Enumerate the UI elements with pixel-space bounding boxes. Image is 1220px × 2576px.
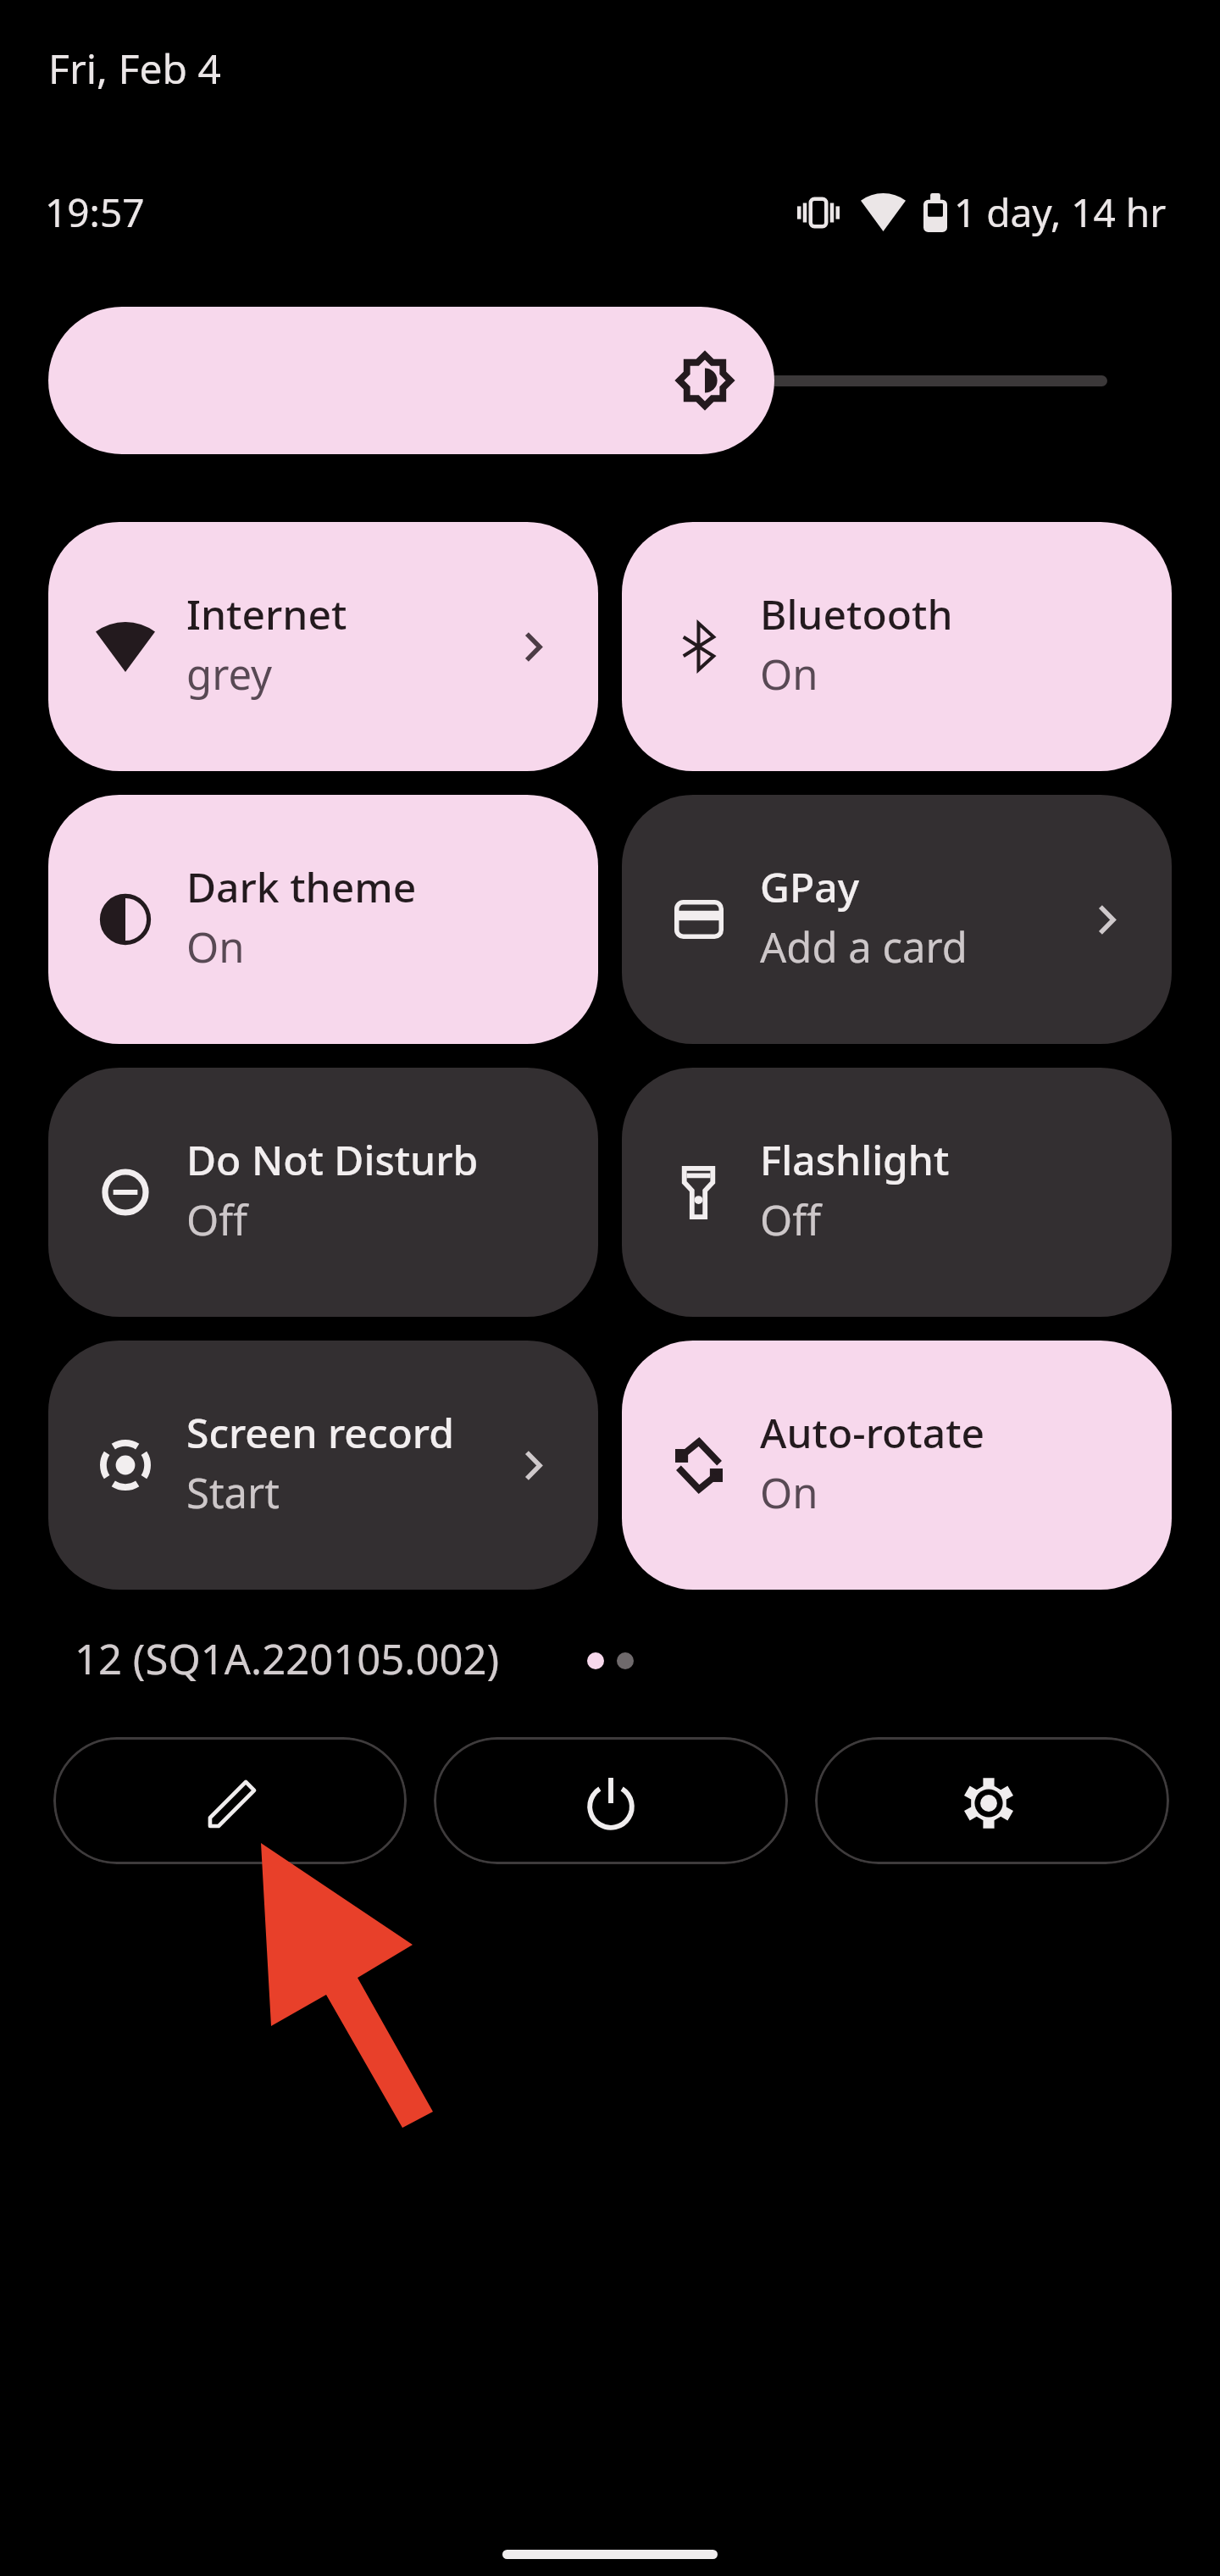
button[interactable]: Bluetooth [622, 522, 1172, 771]
staticText: Flashlight [760, 1132, 950, 1187]
staticText: Off [760, 1191, 821, 1248]
staticText: On [186, 919, 245, 975]
staticText: 1 day, 14 hr [954, 186, 1167, 239]
button[interactable]: Settings [815, 1737, 1169, 1864]
button[interactable]: Dark theme [48, 795, 598, 1044]
staticText: Do Not Disturb [186, 1132, 479, 1187]
staticText: Off [186, 1191, 247, 1248]
staticText: Add a card [760, 919, 968, 975]
button[interactable]: Power [434, 1737, 788, 1864]
staticText: grey [186, 646, 273, 702]
staticText: Internet [186, 586, 347, 641]
staticText: Auto-rotate [760, 1405, 985, 1460]
staticText: On [760, 646, 818, 702]
staticText: 19:57 [45, 186, 145, 239]
staticText: Dark theme [186, 859, 417, 914]
button[interactable]: Screen record [48, 1341, 598, 1590]
button[interactable]: Edit [53, 1737, 407, 1864]
staticText: Start [186, 1464, 280, 1521]
staticText: On [760, 1464, 818, 1521]
button[interactable]: Flashlight [622, 1068, 1172, 1317]
button[interactable]: Brightness [48, 307, 774, 454]
staticText: GPay [760, 859, 859, 914]
staticText: Screen record [186, 1405, 454, 1460]
button[interactable]: GPay [622, 795, 1172, 1044]
button[interactable]: Internet [48, 522, 598, 771]
button[interactable]: Do Not Disturb [48, 1068, 598, 1317]
staticText: 12 (SQ1A.220105.002) [75, 1630, 500, 1681]
staticText: Bluetooth [760, 586, 953, 641]
button[interactable]: Auto-rotate [622, 1341, 1172, 1590]
staticText: Fri, Feb 4 [48, 41, 221, 96]
